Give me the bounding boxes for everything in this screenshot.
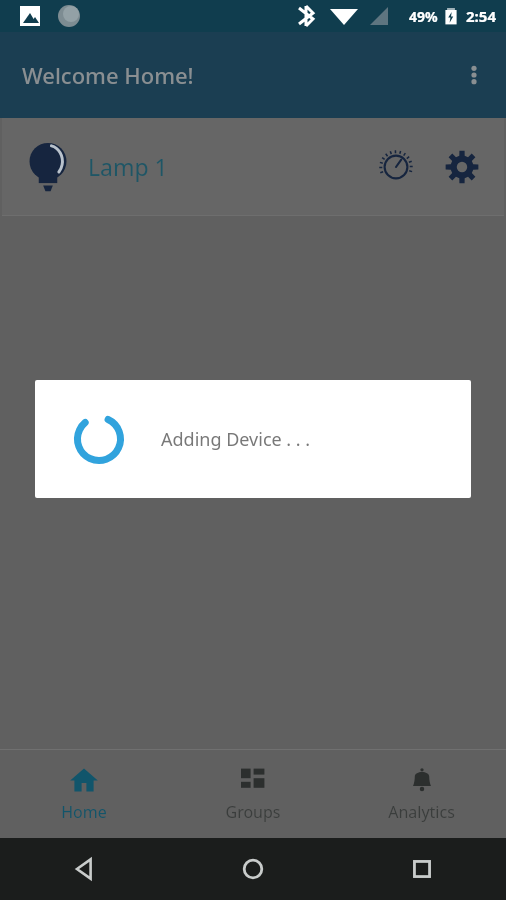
button[interactable]: Lamp 1 [2, 118, 504, 215]
staticText: Home [61, 801, 107, 823]
staticText: Groups [225, 801, 281, 823]
staticText: 49% [409, 7, 438, 26]
staticText: Analytics [388, 801, 455, 823]
button[interactable]: Analytics [337, 750, 506, 838]
button[interactable]: Groups [168, 750, 337, 838]
button[interactable]: Brightness [370, 141, 422, 193]
staticText: Adding Device . . . [161, 427, 311, 452]
button[interactable]: Home [168, 838, 337, 900]
staticText: 2:54 [466, 6, 496, 26]
staticText: Lamp 1 [88, 151, 168, 182]
staticText: Welcome Home! [22, 60, 194, 90]
button[interactable]: Home [0, 750, 168, 838]
button[interactable]: Recents [337, 838, 506, 900]
button[interactable]: Back [0, 838, 168, 900]
button[interactable]: Settings [436, 141, 488, 193]
button[interactable]: More options [450, 51, 498, 99]
